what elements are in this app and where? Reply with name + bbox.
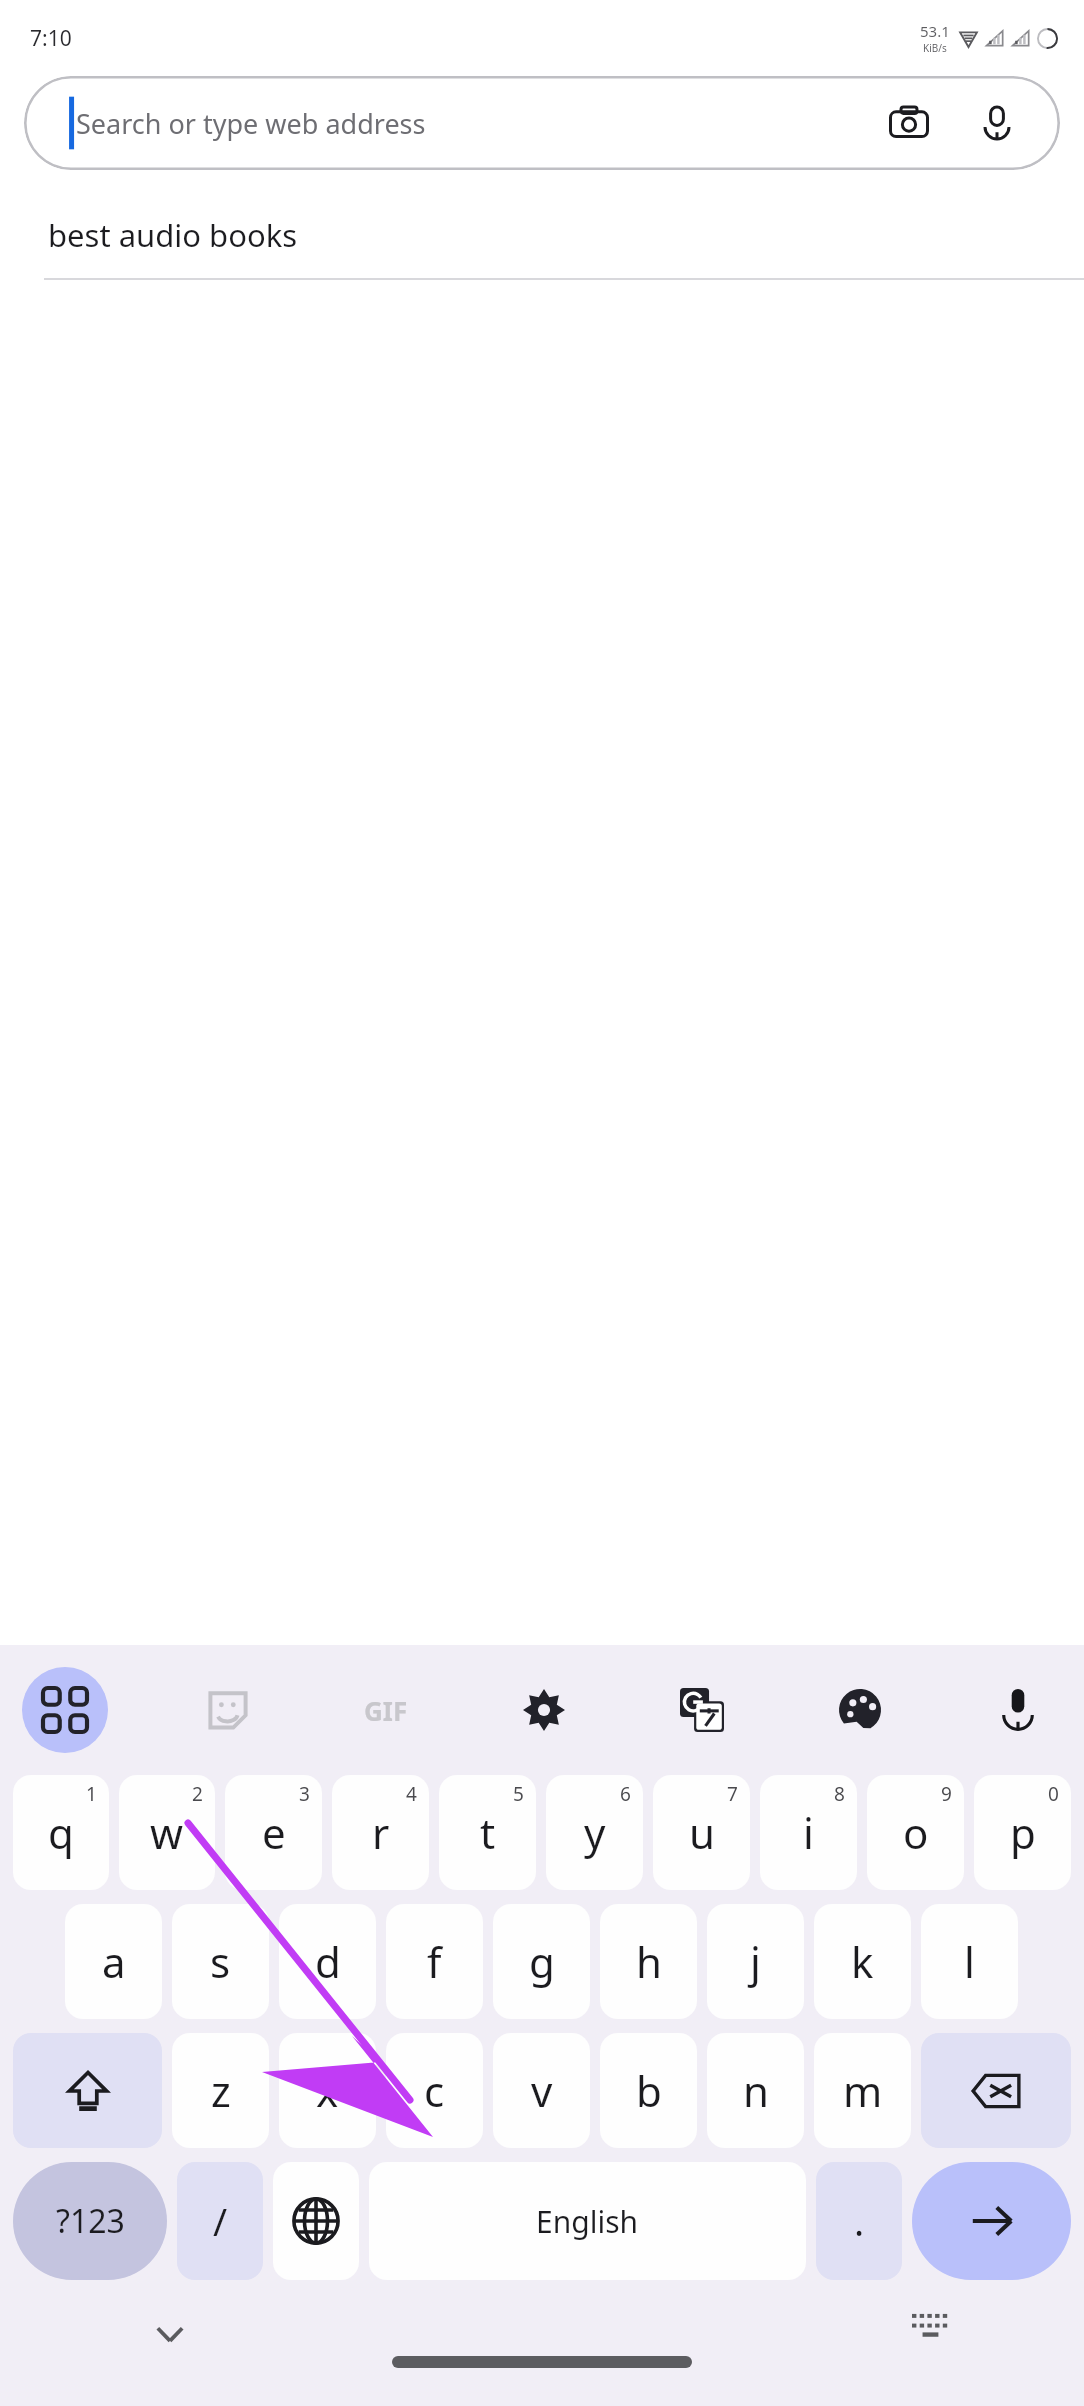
staticText: s xyxy=(210,1933,231,1990)
button[interactable]: e xyxy=(225,1775,322,1890)
button[interactable]: Hide keyboard xyxy=(140,2304,200,2364)
staticText: m xyxy=(843,2062,883,2119)
staticText: / xyxy=(213,2195,228,2247)
button[interactable]: / xyxy=(177,2162,263,2280)
button[interactable]: j xyxy=(707,1904,804,2019)
button[interactable]: Theme xyxy=(822,1672,898,1748)
staticText: 7:10 xyxy=(30,24,72,53)
staticText: 5 xyxy=(513,1781,524,1807)
staticText: h xyxy=(636,1933,662,1990)
button[interactable]: s xyxy=(172,1904,269,2019)
staticText: y xyxy=(584,1804,606,1861)
staticText: ?123 xyxy=(56,2199,125,2243)
button[interactable]: . xyxy=(816,2162,902,2280)
button[interactable]: q xyxy=(13,1775,109,1890)
staticText: a xyxy=(102,1933,126,1990)
button[interactable]: i xyxy=(760,1775,857,1890)
button[interactable]: a xyxy=(65,1904,162,2019)
staticText: GIF xyxy=(364,1693,408,1728)
button[interactable]: h xyxy=(600,1904,697,2019)
staticText: 6 xyxy=(620,1781,631,1807)
staticText: . xyxy=(854,2195,865,2247)
button[interactable]: Voice search xyxy=(968,94,1026,152)
staticText: v xyxy=(531,2062,553,2119)
button[interactable]: Backspace xyxy=(921,2033,1071,2148)
button[interactable]: z xyxy=(172,2033,269,2148)
staticText: c xyxy=(424,2062,445,2119)
staticText: j xyxy=(750,1933,761,1990)
staticText: q xyxy=(48,1804,74,1861)
button[interactable]: best audio books xyxy=(0,192,1084,280)
button[interactable]: w xyxy=(119,1775,215,1890)
staticText: w xyxy=(150,1804,184,1861)
staticText: KiB/s xyxy=(923,41,947,55)
staticText: k xyxy=(851,1933,874,1990)
staticText: 53.1 xyxy=(920,21,950,41)
button[interactable]: ?123 xyxy=(13,2162,167,2280)
button[interactable]: Apps xyxy=(22,1667,108,1753)
button[interactable]: u xyxy=(653,1775,750,1890)
staticText: Search or type web address xyxy=(76,105,426,142)
button[interactable]: x xyxy=(279,2033,376,2148)
button[interactable]: b xyxy=(600,2033,697,2148)
staticText: z xyxy=(211,2062,231,2119)
button[interactable]: v xyxy=(493,2033,590,2148)
button[interactable]: p xyxy=(974,1775,1071,1890)
staticText: 9 xyxy=(941,1781,952,1807)
button[interactable]: Shift xyxy=(13,2033,162,2148)
button[interactable]: Search or type web address xyxy=(24,76,1060,170)
staticText: n xyxy=(743,2062,769,2119)
staticText: 2 xyxy=(192,1781,203,1807)
staticText: 0 xyxy=(1048,1781,1059,1807)
staticText: x xyxy=(316,2062,339,2119)
button[interactable]: English xyxy=(369,2162,806,2280)
staticText: i xyxy=(803,1804,814,1861)
button[interactable]: r xyxy=(332,1775,429,1890)
staticText: b xyxy=(636,2062,662,2119)
button[interactable]: m xyxy=(814,2033,911,2148)
staticText: best audio books xyxy=(48,214,298,256)
staticText: d xyxy=(315,1933,341,1990)
staticText: 8 xyxy=(834,1781,845,1807)
button[interactable]: f xyxy=(386,1904,483,2019)
button[interactable]: Search with camera xyxy=(880,94,938,152)
button[interactable]: Translate xyxy=(664,1672,740,1748)
button[interactable]: GIF xyxy=(348,1672,424,1748)
button[interactable]: g xyxy=(493,1904,590,2019)
staticText: t xyxy=(480,1804,496,1861)
staticText: English xyxy=(536,2201,639,2242)
staticText: 4 xyxy=(406,1781,417,1807)
button[interactable]: Settings xyxy=(506,1672,582,1748)
button[interactable]: Change language xyxy=(273,2162,359,2280)
button[interactable]: Keyboard layout xyxy=(904,2298,964,2358)
staticText: r xyxy=(372,1804,390,1861)
button[interactable]: y xyxy=(546,1775,643,1890)
button[interactable]: Enter xyxy=(912,2162,1071,2280)
staticText: p xyxy=(1010,1804,1036,1861)
button[interactable]: Stickers xyxy=(190,1672,266,1748)
staticText: u xyxy=(689,1804,715,1861)
staticText: 3 xyxy=(299,1781,310,1807)
button[interactable]: n xyxy=(707,2033,804,2148)
button[interactable]: l xyxy=(921,1904,1018,2019)
staticText: l xyxy=(964,1933,975,1990)
button[interactable]: o xyxy=(867,1775,964,1890)
staticText: 1 xyxy=(86,1781,97,1807)
staticText: 7 xyxy=(727,1781,738,1807)
button[interactable]: t xyxy=(439,1775,536,1890)
button[interactable]: d xyxy=(279,1904,376,2019)
button[interactable]: c xyxy=(386,2033,483,2148)
staticText: f xyxy=(427,1933,442,1990)
button[interactable]: k xyxy=(814,1904,911,2019)
staticText: e xyxy=(262,1804,286,1861)
staticText: g xyxy=(529,1933,555,1990)
staticText: o xyxy=(903,1804,929,1861)
button[interactable]: Voice input xyxy=(980,1672,1056,1748)
